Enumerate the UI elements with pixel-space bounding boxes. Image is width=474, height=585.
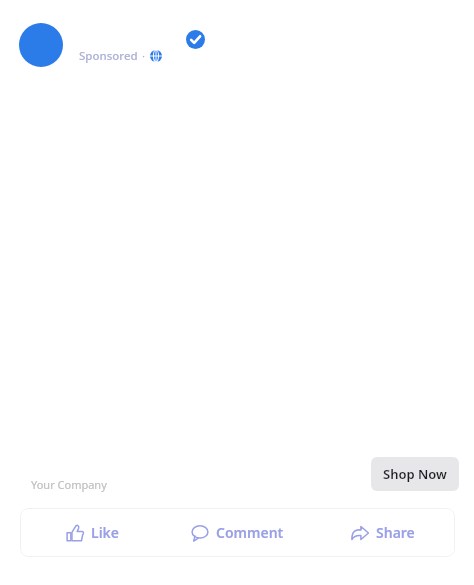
button[interactable]: Verified page	[186, 30, 205, 49]
button[interactable]: Like	[20, 508, 165, 557]
button[interactable]: Share	[310, 508, 455, 557]
staticText: Comment	[216, 523, 284, 542]
staticText: Sponsored	[79, 48, 138, 64]
staticText: Your Company	[31, 477, 107, 492]
staticText: Share	[376, 523, 415, 542]
button[interactable]: Sponsored	[79, 48, 162, 64]
button[interactable]: Advertiser profile picture	[19, 23, 63, 67]
staticText: Shop Now	[383, 465, 447, 483]
staticText: ·	[142, 48, 146, 64]
button[interactable]: Comment	[165, 508, 310, 557]
staticText: Like	[91, 523, 120, 542]
button[interactable]: Shop Now	[371, 457, 459, 491]
